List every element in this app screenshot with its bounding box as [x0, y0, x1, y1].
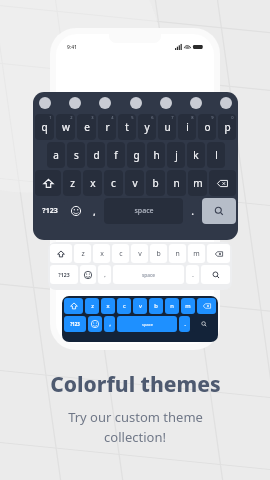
staticText: x — [100, 249, 104, 258]
button[interactable]: q — [35, 114, 54, 140]
staticText: z — [91, 302, 94, 310]
button[interactable]: z — [74, 244, 91, 263]
button[interactable]: Shift — [50, 244, 72, 263]
staticText: a — [53, 148, 59, 162]
button[interactable]: space — [117, 316, 177, 332]
button[interactable]: Backspace — [209, 170, 236, 196]
button[interactable]: g — [127, 142, 145, 168]
button[interactable]: b — [146, 170, 165, 196]
button[interactable]: e — [77, 114, 96, 140]
button[interactable]: Search — [202, 198, 236, 224]
staticText: , — [93, 206, 96, 217]
button[interactable]: Theme 4 — [130, 97, 142, 109]
button[interactable]: j — [167, 142, 185, 168]
button[interactable]: y — [138, 114, 156, 140]
button[interactable]: Theme 1 — [39, 97, 51, 109]
button[interactable]: Search — [192, 316, 216, 332]
button[interactable]: x — [93, 244, 110, 263]
button[interactable]: v — [133, 298, 147, 314]
button[interactable]: t — [118, 114, 136, 140]
button[interactable]: ?123 — [35, 198, 65, 224]
staticText: 1 — [49, 115, 52, 120]
button[interactable]: u — [158, 114, 176, 140]
button[interactable]: n — [169, 244, 186, 263]
staticText: k — [193, 148, 199, 162]
staticText: Colorful themes — [50, 370, 221, 399]
button[interactable]: m — [181, 298, 195, 314]
button[interactable]: b — [149, 298, 163, 314]
staticText: , — [104, 271, 106, 278]
button[interactable]: Search — [201, 265, 230, 284]
button[interactable]: z — [85, 298, 99, 314]
button[interactable]: x — [83, 170, 102, 196]
staticText: z — [81, 249, 85, 258]
button[interactable]: Theme 3 — [99, 97, 111, 109]
staticText: q — [41, 120, 48, 134]
staticText: ?123 — [58, 271, 70, 278]
staticText: b — [154, 302, 158, 310]
staticText: c — [119, 249, 123, 258]
button[interactable]: i — [178, 114, 196, 140]
staticText: 9:41 — [67, 44, 77, 51]
staticText: w — [62, 120, 70, 134]
staticText: collection! — [104, 428, 166, 446]
button[interactable]: Theme 7 — [220, 97, 232, 109]
button[interactable]: x — [101, 298, 115, 314]
button[interactable]: Shift — [64, 298, 83, 314]
button[interactable]: , — [98, 265, 111, 284]
staticText: 7 — [171, 115, 174, 120]
button[interactable]: a — [47, 142, 65, 168]
button[interactable]: k — [187, 142, 205, 168]
button[interactable]: r — [98, 114, 116, 140]
button[interactable]: Backspace — [207, 244, 230, 263]
button[interactable]: , — [104, 316, 115, 332]
button[interactable]: ?123 — [64, 316, 86, 332]
button[interactable]: . — [185, 198, 200, 224]
button[interactable]: c — [117, 298, 131, 314]
button[interactable]: z — [63, 170, 81, 196]
button[interactable]: Theme 5 — [160, 97, 172, 109]
button[interactable]: m — [188, 244, 205, 263]
staticText: space — [142, 272, 155, 278]
staticText: n — [170, 302, 174, 310]
button[interactable]: d — [87, 142, 105, 168]
button[interactable]: n — [165, 298, 179, 314]
button[interactable]: m — [188, 170, 207, 196]
staticText: t — [125, 120, 129, 134]
button[interactable]: l — [207, 142, 225, 168]
button[interactable]: space — [113, 265, 184, 284]
button[interactable]: space — [104, 198, 183, 224]
staticText: x — [90, 176, 96, 190]
staticText: r — [105, 120, 110, 134]
button[interactable]: o — [198, 114, 216, 140]
button[interactable]: Theme 6 — [190, 97, 202, 109]
staticText: 3 — [91, 115, 94, 120]
button[interactable]: n — [167, 170, 186, 196]
button[interactable]: p — [218, 114, 236, 140]
button[interactable]: . — [186, 265, 199, 284]
button[interactable]: c — [112, 244, 129, 263]
staticText: e — [84, 120, 90, 134]
button[interactable]: f — [107, 142, 125, 168]
staticText: space — [142, 322, 153, 327]
button[interactable]: Emoji — [80, 265, 96, 284]
button[interactable]: . — [179, 316, 190, 332]
button[interactable]: Backspace — [197, 298, 216, 314]
button[interactable]: w — [56, 114, 75, 140]
button[interactable]: s — [67, 142, 85, 168]
button[interactable]: v — [131, 244, 148, 263]
button[interactable]: Emoji — [67, 198, 85, 224]
staticText: b — [156, 249, 161, 258]
button[interactable]: h — [147, 142, 165, 168]
staticText: 8 — [191, 115, 194, 120]
button[interactable]: , — [87, 198, 102, 224]
button[interactable]: b — [150, 244, 167, 263]
button[interactable]: Shift — [35, 170, 61, 196]
button[interactable]: v — [125, 170, 144, 196]
button[interactable]: c — [104, 170, 123, 196]
button[interactable]: ?123 — [50, 265, 78, 284]
button[interactable]: Theme 2 — [69, 97, 81, 109]
staticText: ?123 — [70, 321, 80, 327]
button[interactable]: Emoji — [88, 316, 102, 332]
staticText: ?123 — [42, 206, 58, 216]
